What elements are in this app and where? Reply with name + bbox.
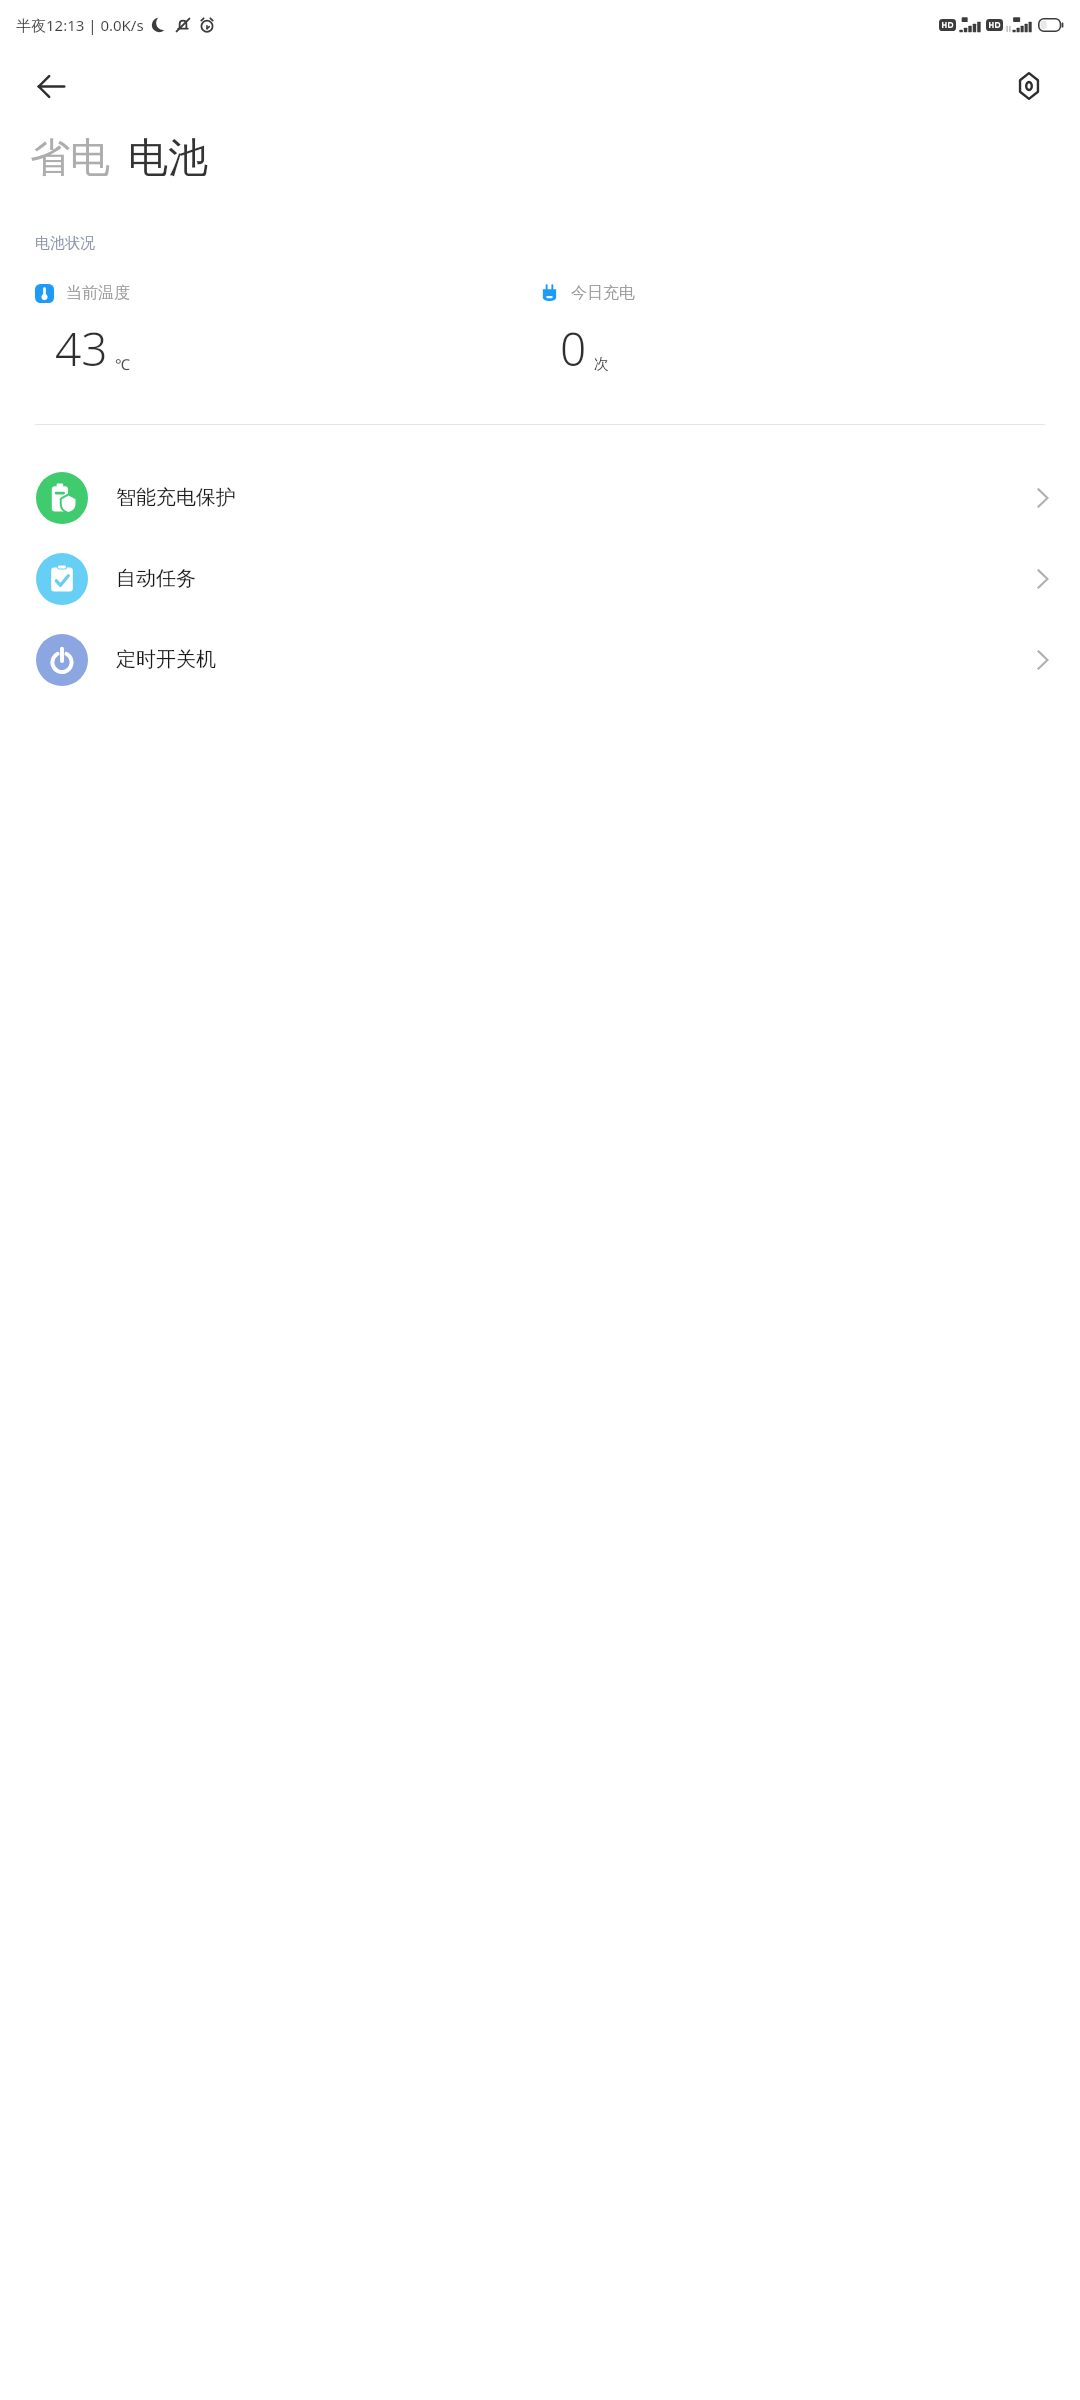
staticText: 定时开关机: [116, 647, 216, 672]
button[interactable]: 定时开关机: [0, 619, 1080, 700]
staticText: 电池状况: [35, 234, 95, 253]
staticText: 省电: [30, 132, 110, 182]
button[interactable]: 智能充电保护: [0, 457, 1080, 538]
button[interactable]: 自动任务: [0, 538, 1080, 619]
staticText: 半夜12:13 | 0.0K/s: [16, 15, 144, 35]
button[interactable]: 设置: [1004, 61, 1054, 111]
staticText: 次: [594, 355, 609, 374]
staticText: 电池: [128, 132, 208, 182]
button[interactable]: 返回: [26, 61, 76, 111]
staticText: 43: [55, 317, 108, 380]
staticText: 今日充电: [571, 283, 635, 303]
staticText: 智能充电保护: [116, 485, 236, 510]
staticText: 0: [560, 317, 587, 380]
staticText: 当前温度: [66, 283, 130, 303]
staticText: ℃: [115, 354, 130, 374]
staticText: 自动任务: [116, 566, 196, 591]
